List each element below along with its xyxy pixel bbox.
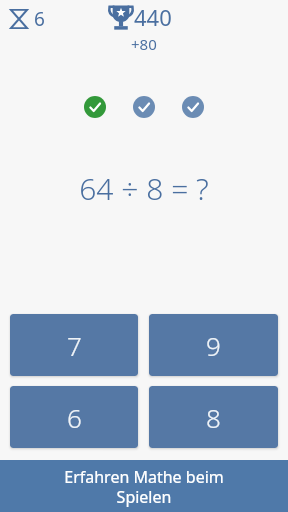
staticText: 7 — [67, 328, 82, 363]
button[interactable]: 8 — [149, 386, 278, 448]
button[interactable]: Erfahren Mathe beim Spielen — [0, 460, 288, 512]
staticText: 6 — [34, 6, 45, 32]
staticText: 440 — [134, 2, 172, 32]
button[interactable]: 9 — [149, 314, 278, 376]
button[interactable]: 6 — [10, 6, 45, 32]
staticText: 64 ÷ 8 = ? — [79, 168, 209, 209]
staticText: 9 — [206, 328, 221, 363]
staticText: Erfahren Mathe beim Spielen — [64, 466, 224, 507]
staticText: +80 — [131, 34, 157, 54]
button[interactable]: 440 — [108, 2, 172, 54]
staticText: 6 — [67, 400, 82, 435]
button[interactable]: 6 — [10, 386, 138, 448]
staticText: 8 — [206, 400, 221, 435]
button[interactable]: 7 — [10, 314, 138, 376]
